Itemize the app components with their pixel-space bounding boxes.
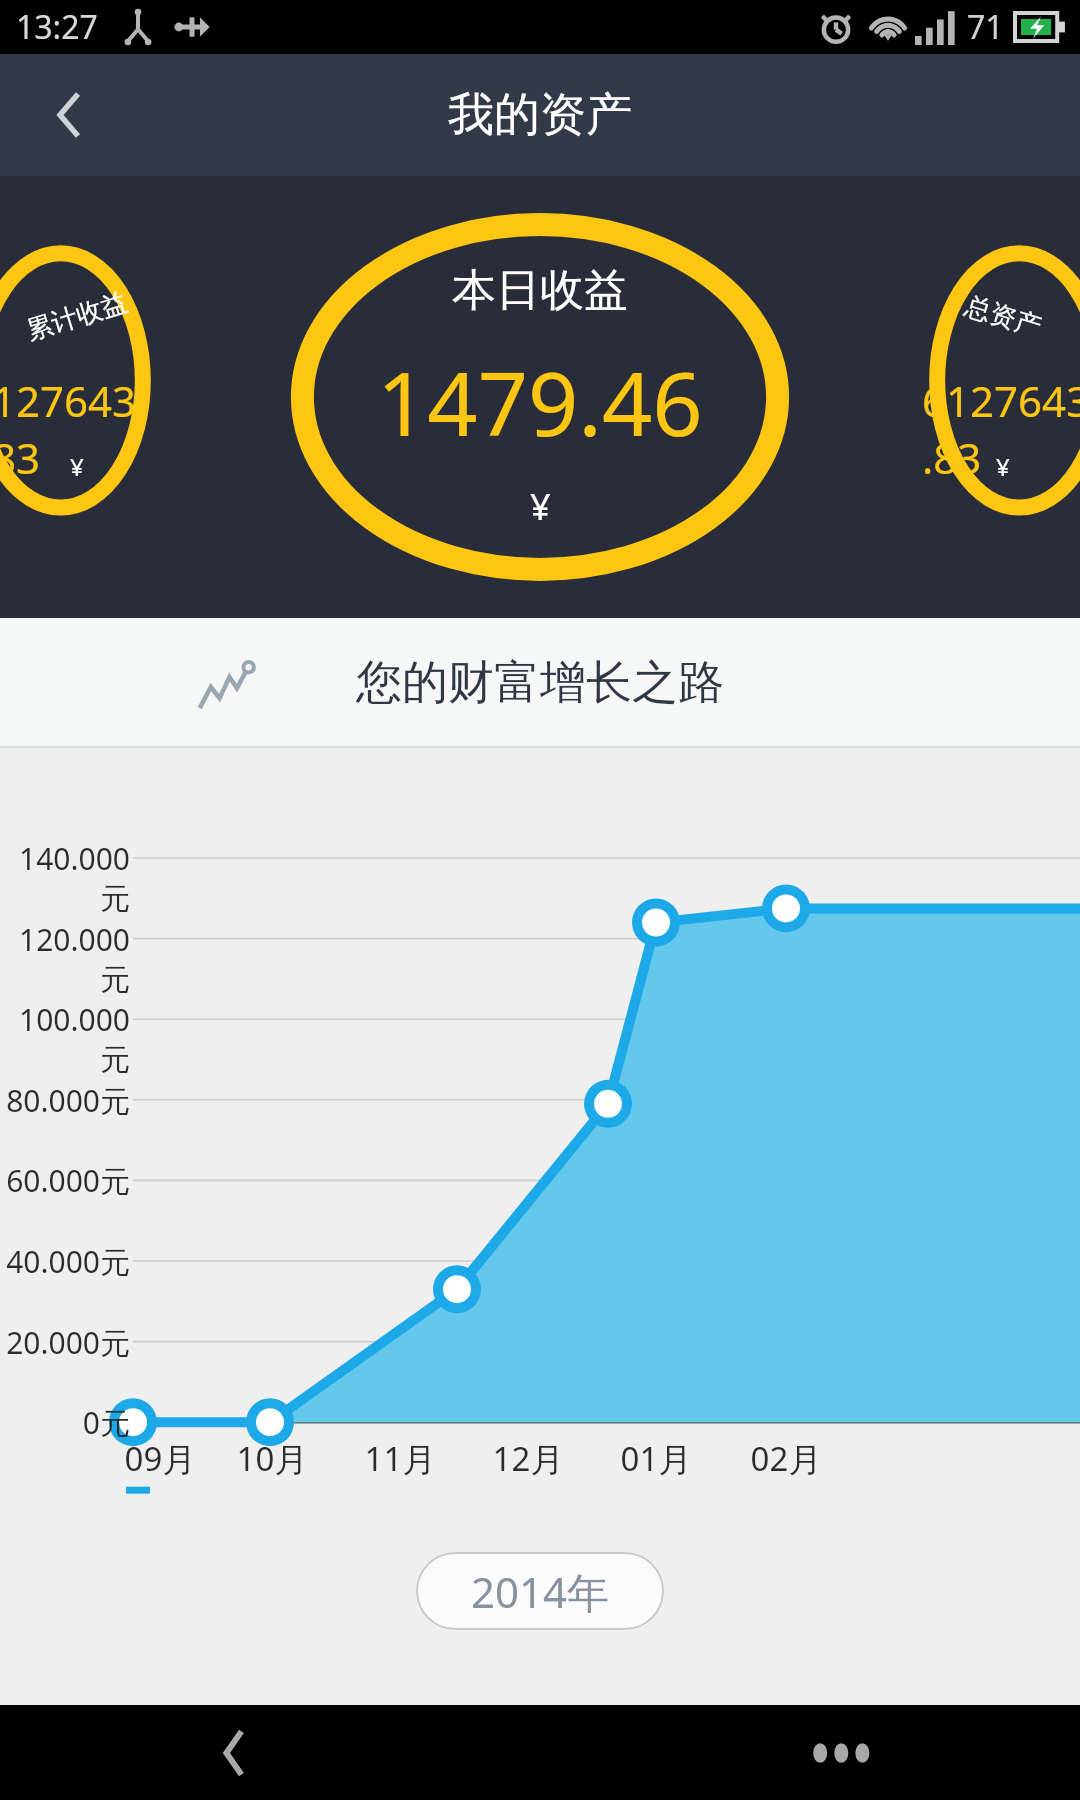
staticText: 02月 [731,1436,841,1481]
staticText: 09月 [105,1436,215,1481]
staticText: ¥ [530,482,551,531]
button[interactable]: Back [0,54,140,176]
staticText: 本日收益 [452,263,628,318]
staticText: 01月 [601,1436,711,1481]
staticText: 60.000元 [0,1160,130,1201]
staticText: 我的资产 [448,86,632,144]
staticText: 您的财富增长之路 [356,654,724,712]
staticText: 140.000元 [0,838,130,918]
staticText: 累计收益 [22,285,131,347]
button[interactable]: More options [790,1705,900,1800]
staticText: 13:27 [16,5,98,49]
staticText: 0元 [0,1402,130,1443]
staticText: 100.000元 [0,999,130,1079]
button[interactable]: Back [180,1705,290,1800]
staticText: 总资产 [961,289,1045,344]
staticText: 12月 [473,1436,583,1481]
staticText: 120.000元 [0,919,130,999]
staticText: 40.000元 [0,1241,130,1282]
staticText: 127643.83 [0,372,162,486]
staticText: 2014年 [471,1563,610,1620]
staticText: 80.000元 [0,1080,130,1121]
staticText: ¥ [996,450,1010,483]
staticText: 71 [967,5,1004,49]
staticText: ¥ [70,450,84,483]
staticText: 10月 [217,1436,327,1481]
staticText: 1479.46 [377,342,703,462]
staticText: 11月 [345,1436,455,1481]
staticText: 20.000元 [0,1322,130,1363]
button[interactable]: 2014年 [416,1552,664,1630]
staticText: 6127643.83 [922,372,1080,486]
